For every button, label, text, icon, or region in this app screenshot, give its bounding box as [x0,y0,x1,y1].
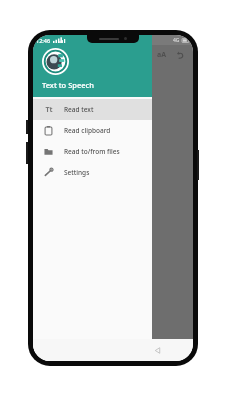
button[interactable]: Back [149,342,165,358]
button[interactable]: Tt [33,99,152,120]
staticText: aA [157,50,167,60]
staticText: Text to Speech [42,80,94,90]
staticText: Settings [64,168,90,177]
button[interactable]: Font size [155,48,169,62]
staticText: 12:46 [36,37,51,44]
staticText: 4G [173,37,180,44]
staticText: Read text [64,105,94,114]
staticText: Sound wave [39,121,79,131]
staticText: Read text aloud with [39,69,107,79]
staticText: Progress [39,175,68,185]
button[interactable]: Read to/from files [33,141,152,162]
button[interactable]: Undo [173,48,187,62]
staticText: Tt [45,105,53,114]
staticText: automatic [39,82,73,92]
staticText: Read clipboard [64,126,111,135]
staticText: language playback [39,95,101,105]
button[interactable]: Settings [33,162,152,183]
button[interactable]: Read clipboard [33,120,152,141]
staticText: Read to/from files [64,147,120,156]
